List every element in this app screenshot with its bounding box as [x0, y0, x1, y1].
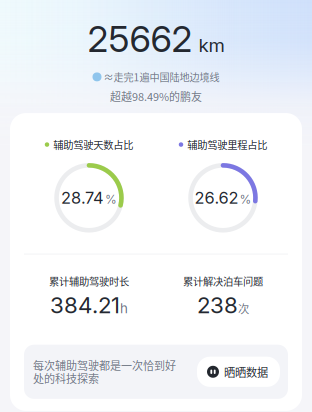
staticText: 累计解决泊车问题: [183, 274, 263, 288]
staticText: ≈走完1遍中国陆地边境线: [103, 70, 219, 84]
staticText: 238: [197, 292, 238, 319]
button[interactable]: 晒晒数据: [197, 357, 280, 387]
staticText: 384.21: [50, 292, 120, 319]
staticText: %: [105, 192, 117, 207]
staticText: %: [239, 192, 251, 207]
staticText: 辅助驾驶里程占比: [187, 137, 267, 152]
staticText: 辅助驾驶天数占比: [53, 137, 133, 152]
staticText: 超越98.49%的鹏友: [110, 88, 202, 104]
staticText: 25662: [87, 17, 192, 61]
staticText: h: [120, 300, 128, 316]
staticText: 晒晒数据: [224, 364, 268, 380]
staticText: 26.62: [194, 188, 238, 208]
staticText: 累计辅助驾驶时长: [49, 274, 129, 288]
staticText: 次: [238, 300, 249, 316]
staticText: 28.74: [61, 188, 104, 208]
staticText: km: [198, 34, 224, 56]
staticText: 每次辅助驾驶都是一次恰到好处的科技探索: [33, 357, 176, 386]
